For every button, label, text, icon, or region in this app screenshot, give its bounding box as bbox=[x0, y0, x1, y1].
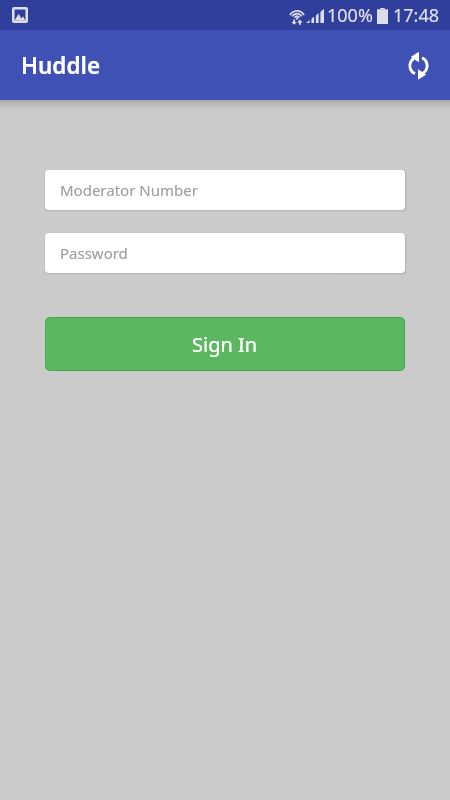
staticText: 17:48 bbox=[393, 3, 440, 28]
staticText: Huddle bbox=[21, 50, 101, 81]
staticText: Moderator Number bbox=[60, 180, 198, 200]
staticText: Sign In bbox=[192, 331, 258, 358]
staticText: 100% bbox=[327, 3, 373, 28]
button[interactable]: Refresh bbox=[398, 45, 438, 85]
button[interactable]: Password bbox=[45, 233, 405, 273]
button[interactable]: Moderator Number bbox=[45, 170, 405, 210]
button[interactable]: Sign In bbox=[45, 317, 405, 371]
staticText: Password bbox=[60, 243, 128, 263]
